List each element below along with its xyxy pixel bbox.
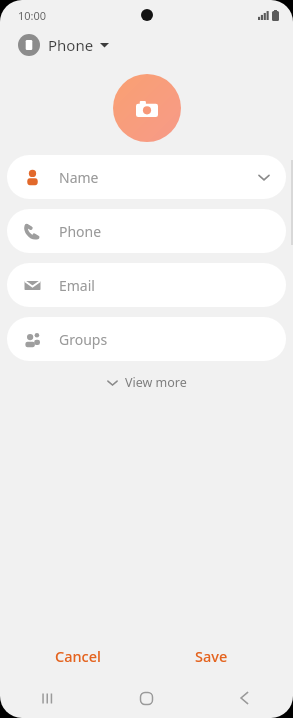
- staticText: Name: [59, 168, 99, 187]
- button[interactable]: Groups: [7, 317, 286, 361]
- button[interactable]: Add contact photo: [113, 74, 181, 142]
- staticText: View more: [125, 374, 187, 391]
- button[interactable]: Save: [183, 640, 240, 672]
- staticText: Groups: [59, 330, 108, 349]
- staticText: Phone: [59, 222, 102, 241]
- button[interactable]: Recents: [0, 678, 97, 718]
- button[interactable]: View more: [97, 369, 197, 396]
- staticText: Save: [195, 646, 228, 666]
- staticText: Phone: [48, 35, 94, 55]
- staticText: Cancel: [55, 646, 101, 666]
- button[interactable]: Cancel: [43, 640, 113, 672]
- button[interactable]: Name: [7, 155, 286, 199]
- button[interactable]: Back: [195, 678, 293, 718]
- button[interactable]: Home: [97, 678, 195, 718]
- button[interactable]: Phone: [16, 30, 111, 60]
- staticText: 10:00: [18, 8, 47, 23]
- button[interactable]: Email: [7, 263, 286, 307]
- staticText: Email: [59, 276, 95, 295]
- button[interactable]: Phone: [7, 209, 286, 253]
